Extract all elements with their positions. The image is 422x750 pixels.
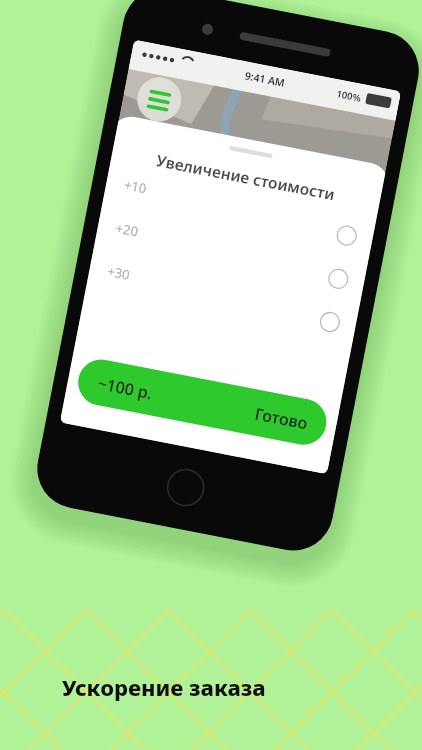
button[interactable]: Ускорение заказа promo: [0, 0, 422, 750]
